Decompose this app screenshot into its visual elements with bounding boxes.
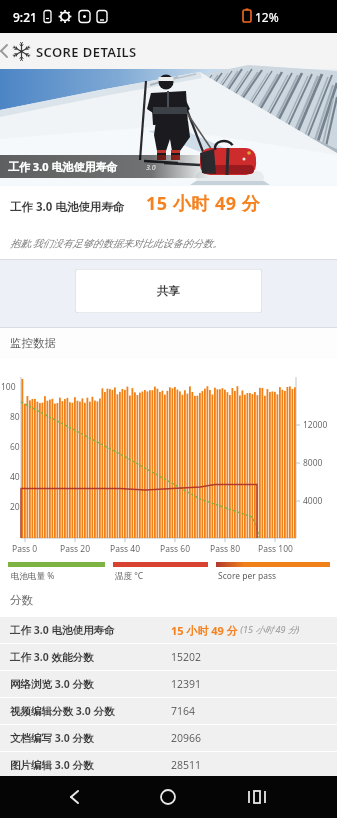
staticText: 28511	[171, 758, 202, 772]
staticText: 温度 °C	[115, 570, 144, 582]
staticText: 抱歉,我们没有足够的数据来对比此设备的分数。	[10, 236, 223, 250]
button[interactable]: 工作 3.0 效能分数	[0, 644, 337, 670]
button[interactable]	[55, 776, 95, 818]
button[interactable]: 视频编辑分数 3.0 分数	[0, 698, 337, 724]
staticText: 4000	[303, 495, 323, 507]
staticText: 共享	[157, 284, 180, 298]
staticText: 电池电量 %	[11, 570, 55, 582]
staticText: Score per pass	[218, 570, 277, 582]
staticText: 9:21	[13, 9, 37, 25]
staticText: 工作 3.0 电池使用寿命	[10, 623, 115, 637]
staticText: 15 小时 49 分	[146, 191, 261, 216]
staticText: Pass 20	[60, 543, 90, 555]
staticText: 20	[10, 501, 20, 513]
button[interactable]: 文档编写 3.0 分数	[0, 725, 337, 751]
staticText: 60	[10, 441, 20, 453]
staticText: Pass 40	[110, 543, 140, 555]
staticText: 分数	[10, 593, 33, 607]
staticText: 15202	[171, 650, 202, 664]
staticText: Pass 100	[258, 543, 293, 555]
staticText: SCORE DETAILS	[36, 43, 137, 61]
staticText: 12391	[171, 677, 202, 691]
staticText: (15 小时 49 分)	[238, 623, 300, 635]
staticText: 12000	[303, 419, 328, 431]
button[interactable]	[0, 41, 14, 61]
staticText: 20966	[171, 731, 202, 745]
staticText: 15 小时 49 分	[171, 623, 238, 638]
staticText: 图片编辑 3.0 分数	[10, 758, 94, 772]
staticText: 工作 3.0 电池使用寿命	[10, 199, 125, 215]
staticText: 视频编辑分数 3.0 分数	[10, 704, 115, 718]
staticText: 12%	[255, 9, 279, 25]
staticText: 80	[10, 411, 20, 423]
staticText: Pass 60	[160, 543, 190, 555]
button[interactable]	[237, 776, 277, 818]
button[interactable]	[148, 776, 188, 818]
staticText: 工作 3.0 电池使用寿命	[8, 159, 118, 174]
staticText: Pass 80	[210, 543, 240, 555]
staticText: 7164	[171, 704, 196, 718]
button[interactable]: 工作 3.0 电池使用寿命	[0, 617, 337, 643]
staticText: 8000	[303, 457, 323, 469]
staticText: 文档编写 3.0 分数	[10, 731, 94, 745]
staticText: 100	[1, 381, 16, 393]
staticText: Pass 0	[12, 543, 38, 555]
staticText: 监控数据	[10, 336, 56, 350]
staticText: 3.0	[146, 163, 156, 173]
staticText: 工作 3.0 效能分数	[10, 650, 94, 664]
staticText: 40	[10, 471, 20, 483]
staticText: 网络浏览 3.0 分数	[10, 677, 94, 691]
button[interactable]: 共享	[75, 269, 262, 313]
button[interactable]: 图片编辑 3.0 分数	[0, 752, 337, 778]
button[interactable]: 网络浏览 3.0 分数	[0, 671, 337, 697]
